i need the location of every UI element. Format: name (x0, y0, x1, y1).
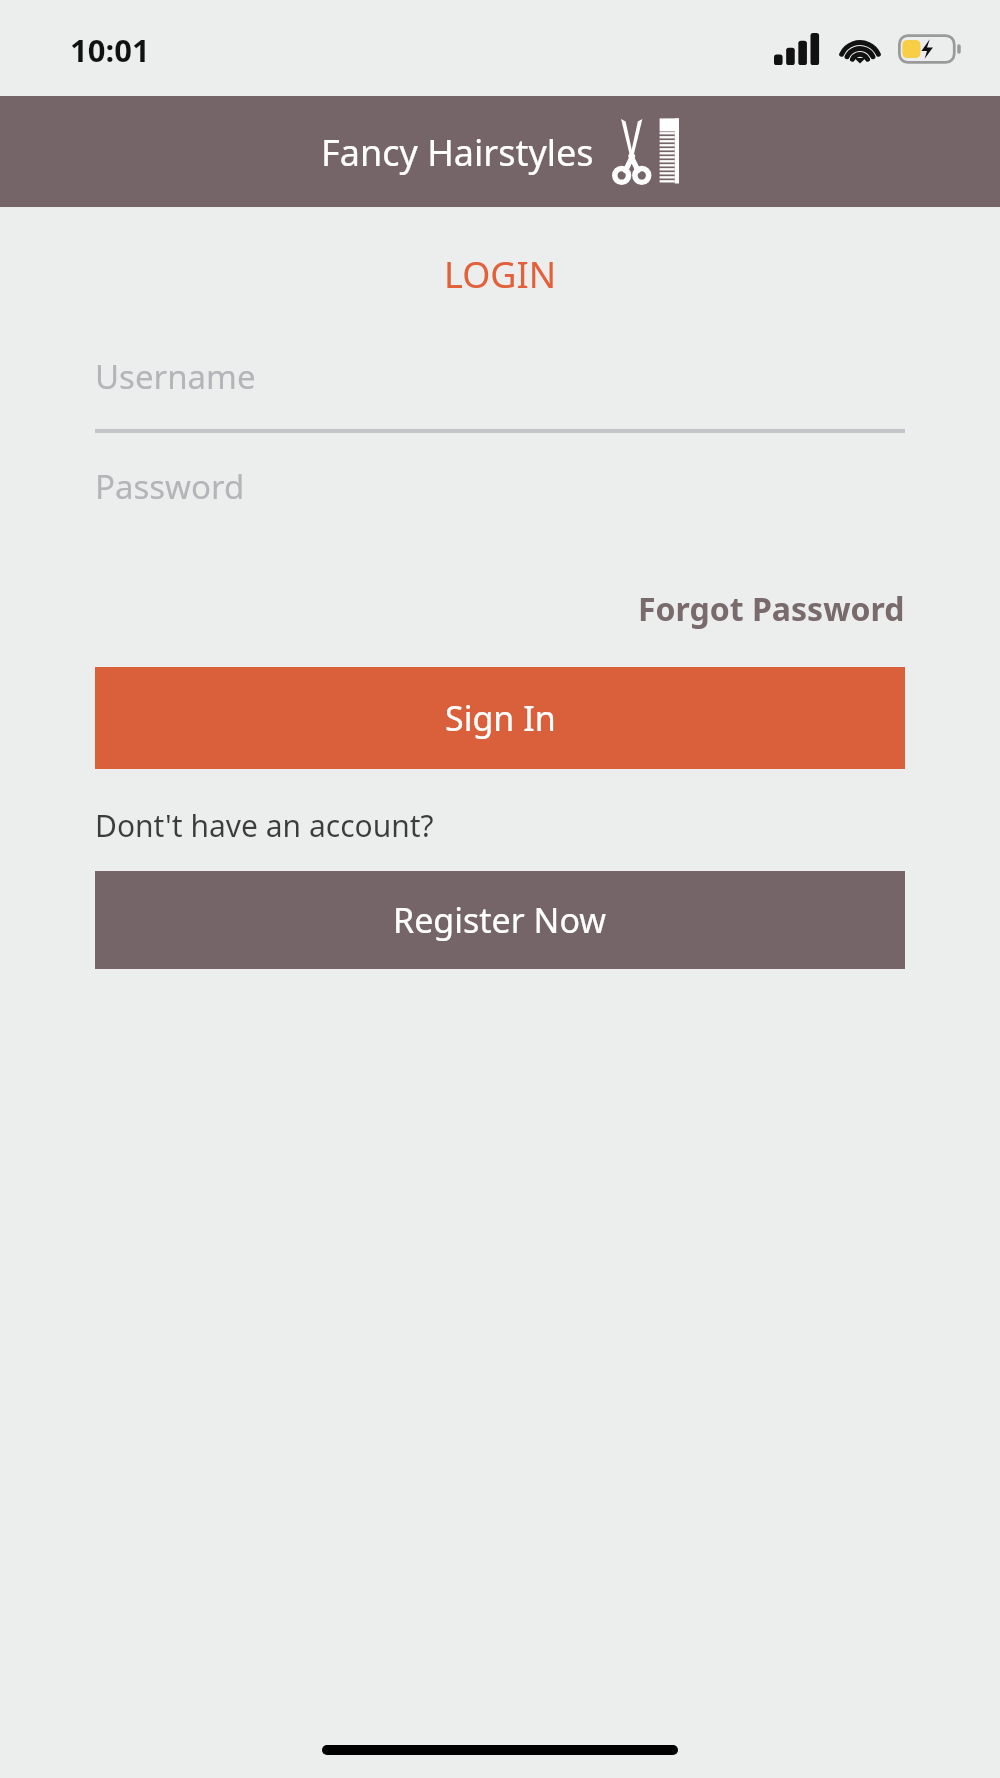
staticText: Register Now (393, 897, 607, 943)
button[interactable]: Forgot Password (638, 587, 905, 631)
staticText: Sign In (445, 695, 556, 741)
staticText: Forgot Password (638, 587, 905, 631)
staticText: Fancy Hairstyles (321, 128, 594, 177)
staticText: Password (95, 464, 245, 509)
button[interactable]: Register Now (95, 871, 905, 969)
button[interactable]: Sign In (95, 667, 905, 769)
other: Scissors and comb logo (612, 117, 680, 187)
staticText: Username (95, 354, 256, 399)
staticText: 10:01 (70, 29, 150, 71)
staticText: LOGIN (444, 250, 557, 299)
button[interactable]: Password (95, 457, 905, 515)
staticText: Dont't have an account? (95, 805, 434, 846)
button[interactable]: Username (95, 347, 905, 433)
